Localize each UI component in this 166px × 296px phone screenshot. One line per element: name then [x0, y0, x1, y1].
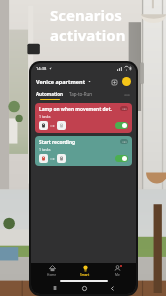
staticText: Lamp on when movement det.	[39, 106, 112, 113]
button[interactable]: Home	[47, 263, 57, 279]
button[interactable]: Add device	[110, 78, 118, 86]
button[interactable]: Start recording	[35, 136, 132, 166]
button[interactable]: Automation	[36, 91, 63, 100]
staticText: 1 tasks	[39, 147, 51, 152]
button[interactable]: Edit scenario	[120, 106, 128, 111]
staticText: Tap-to-Run	[69, 91, 93, 97]
button[interactable]: Venice apartment	[36, 78, 91, 85]
staticText: Scenarios	[50, 5, 122, 25]
button[interactable]: Lamp on when movement det.	[35, 103, 132, 133]
staticText: Smart	[80, 273, 90, 277]
button[interactable]: Me	[114, 263, 121, 279]
button[interactable]: Recents	[50, 283, 60, 293]
button[interactable]: Profile	[122, 77, 131, 86]
button[interactable]: More options	[123, 91, 131, 99]
button[interactable]: Home	[79, 283, 89, 293]
staticText: Start recording	[39, 139, 76, 146]
staticText: 14:38	[36, 66, 47, 71]
button[interactable]: Tap-to-Run	[69, 91, 93, 99]
staticText: Venice apartment	[36, 78, 86, 85]
button[interactable]: Edit scenario	[120, 139, 128, 144]
staticText: activation	[50, 25, 126, 45]
button[interactable]: Toggle scenario	[115, 122, 128, 129]
staticText: 1 tasks	[39, 114, 51, 119]
staticText: Home	[47, 273, 57, 277]
button[interactable]: Back	[107, 283, 117, 293]
button[interactable]: Toggle scenario	[115, 155, 128, 162]
staticText: Me	[115, 273, 120, 277]
staticText: Automation	[36, 91, 63, 97]
button[interactable]: Smart	[80, 263, 90, 279]
